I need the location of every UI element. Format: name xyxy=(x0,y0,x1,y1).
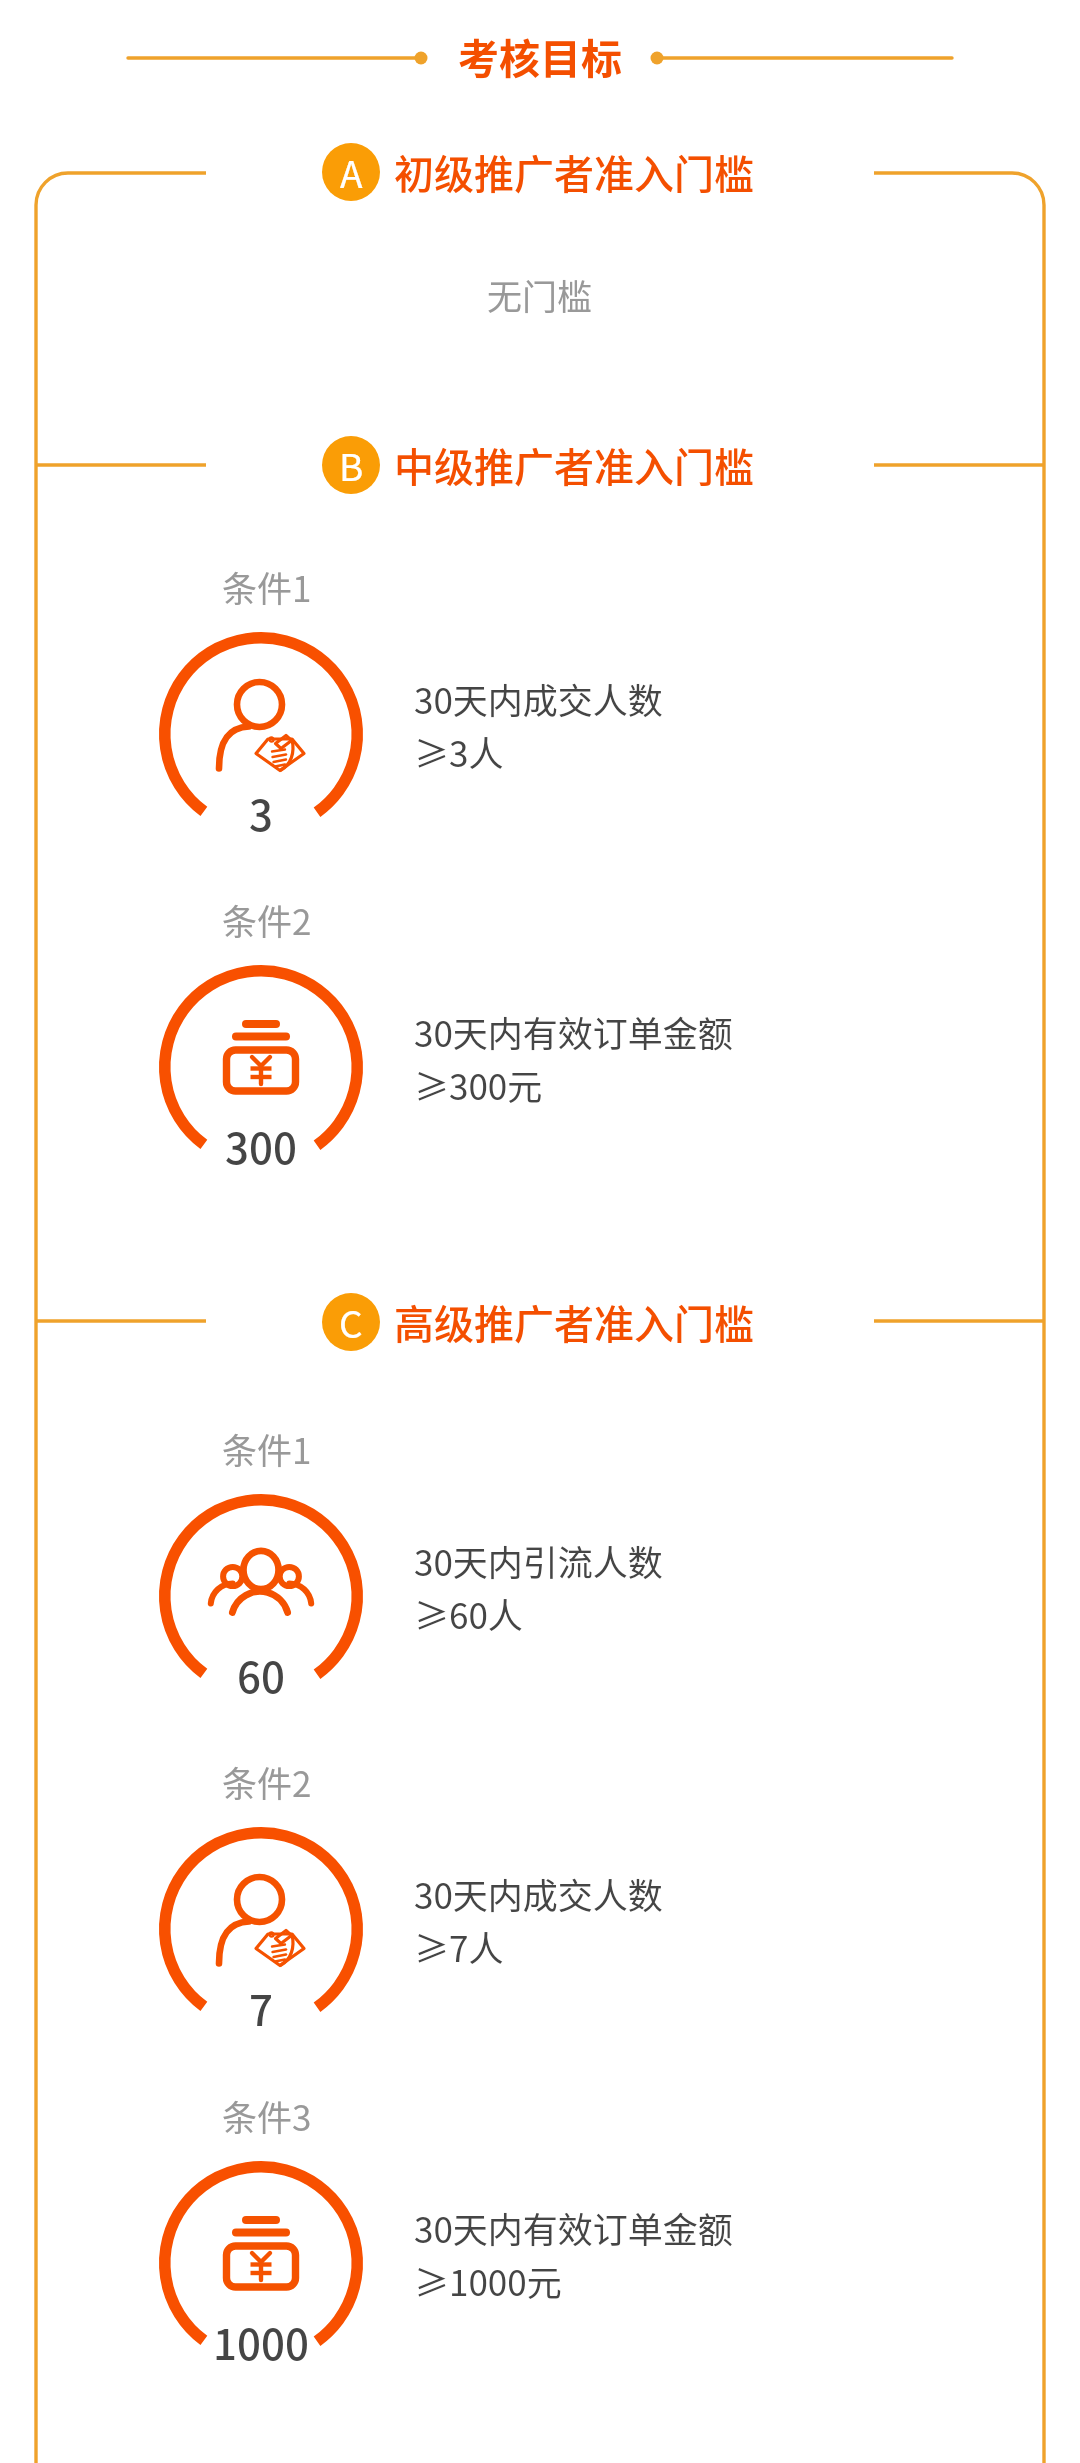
button[interactable]: 条件1 xyxy=(222,561,312,612)
staticText: 条件2 xyxy=(222,894,312,945)
button[interactable]: 条件1 xyxy=(222,1423,312,1474)
staticText: 1000 xyxy=(213,2311,309,2372)
button[interactable]: 条件2 xyxy=(222,1756,312,1807)
other: 成交人数 xyxy=(159,632,363,836)
button[interactable]: C xyxy=(322,1293,754,1351)
staticText: 30天内有效订单金额 xyxy=(414,2202,733,2253)
staticText: ≥3人 xyxy=(414,726,504,777)
staticText: ≥7人 xyxy=(414,1921,504,1972)
staticText: ≥60人 xyxy=(414,1588,523,1639)
button[interactable]: 有效订单金额 xyxy=(159,965,719,1169)
button[interactable]: 成交人数 xyxy=(159,1827,719,2031)
staticText: ≥1000元 xyxy=(414,2255,562,2306)
staticText: 无门槛 xyxy=(487,269,593,320)
staticText: 条件3 xyxy=(222,2090,312,2141)
other: 引流人数 xyxy=(159,1494,363,1698)
staticText: 条件1 xyxy=(222,1423,312,1474)
staticText: 考核目标 xyxy=(458,26,622,85)
staticText: 中级推广者准入门槛 xyxy=(394,436,754,494)
staticText: 高级推广者准入门槛 xyxy=(394,1293,754,1351)
staticText: 条件1 xyxy=(222,561,312,612)
button[interactable]: B xyxy=(322,436,754,494)
staticText: ≥300元 xyxy=(414,1059,543,1110)
button[interactable]: 成交人数 xyxy=(159,632,719,836)
staticText: A xyxy=(340,145,363,199)
staticText: 7 xyxy=(249,1977,273,2038)
staticText: 3 xyxy=(249,782,273,843)
staticText: 30天内成交人数 xyxy=(414,1868,663,1919)
staticText: C xyxy=(339,1295,363,1349)
staticText: 30天内引流人数 xyxy=(414,1535,663,1586)
other: 有效订单金额 xyxy=(159,965,363,1169)
staticText: 30天内有效订单金额 xyxy=(414,1006,733,1057)
button[interactable]: 考核目标 xyxy=(0,26,1080,85)
staticText: 初级推广者准入门槛 xyxy=(394,143,754,201)
button[interactable]: A xyxy=(322,143,754,201)
staticText: 300 xyxy=(225,1115,297,1176)
button[interactable]: 有效订单金额 xyxy=(159,2161,719,2365)
staticText: B xyxy=(339,438,364,492)
staticText: 条件2 xyxy=(222,1756,312,1807)
button[interactable]: 条件2 xyxy=(222,894,312,945)
staticText: 60 xyxy=(237,1644,285,1705)
button[interactable]: 条件3 xyxy=(222,2090,312,2141)
button[interactable]: 引流人数 xyxy=(159,1494,719,1698)
other: 有效订单金额 xyxy=(159,2161,363,2365)
other: 成交人数 xyxy=(159,1827,363,2031)
staticText: 30天内成交人数 xyxy=(414,673,663,724)
